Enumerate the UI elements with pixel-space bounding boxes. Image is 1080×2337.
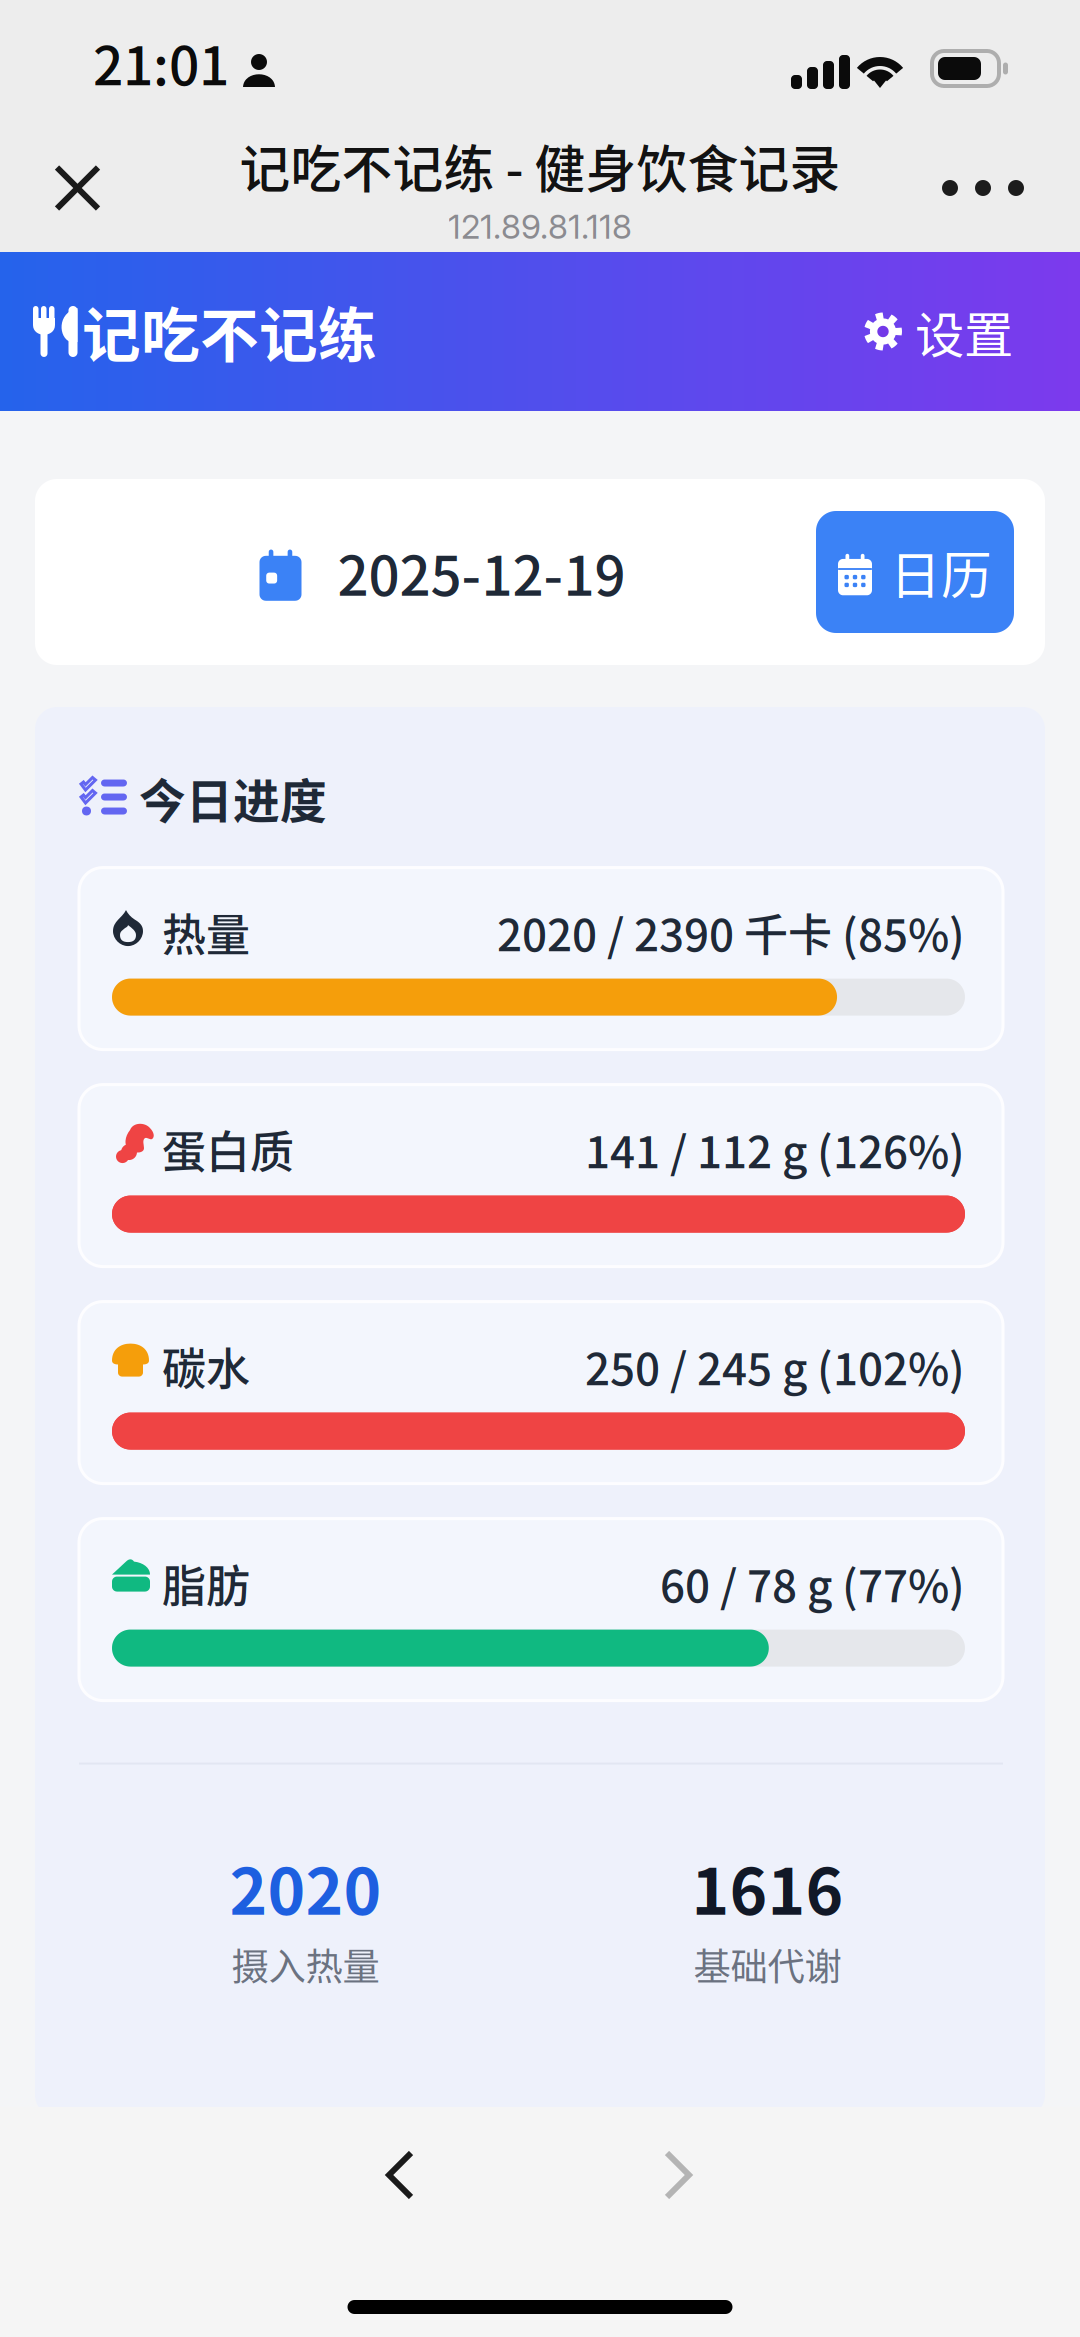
- button[interactable]: 前进: [633, 2119, 725, 2231]
- button[interactable]: 更多: [920, 158, 1046, 218]
- button[interactable]: 日历: [816, 511, 1014, 633]
- staticText: 2025-12-19: [337, 532, 625, 612]
- staticText: 记吃不记练 - 健身饮食记录: [239, 129, 840, 203]
- staticText: 摄入热量: [231, 1937, 379, 1991]
- staticText: 60 / 78 g (77%): [660, 1551, 965, 1615]
- button[interactable]: 设置: [848, 284, 1023, 379]
- staticText: 250 / 245 g (102%): [585, 1334, 965, 1398]
- button[interactable]: 后退: [355, 2119, 447, 2231]
- staticText: 1616: [691, 1841, 843, 1933]
- staticText: 热量: [162, 900, 250, 964]
- staticText: 基础代谢: [693, 1937, 841, 1991]
- staticText: 21:01: [93, 23, 229, 101]
- staticText: 碳水: [162, 1334, 250, 1398]
- staticText: 2020: [229, 1841, 381, 1933]
- staticText: 日历: [890, 535, 992, 609]
- staticText: 脂肪: [162, 1551, 250, 1615]
- staticText: 今日进度: [139, 764, 327, 832]
- staticText: 141 / 112 g (126%): [585, 1117, 965, 1181]
- staticText: 2020 / 2390 千卡 (85%): [497, 900, 965, 964]
- staticText: 设置: [915, 296, 1013, 367]
- staticText: 记吃不记练: [82, 289, 377, 374]
- staticText: 蛋白质: [162, 1117, 294, 1181]
- button[interactable]: 关闭: [35, 145, 120, 230]
- staticText: 121.89.81.118: [448, 206, 632, 247]
